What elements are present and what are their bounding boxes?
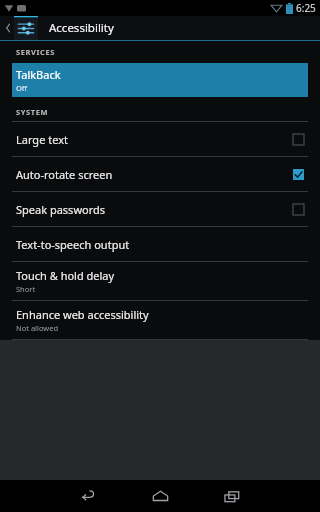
button[interactable]: Text-to-speech output	[0, 227, 320, 261]
button[interactable]: Auto-rotate screen	[0, 157, 320, 191]
button[interactable]: Enhance web accessibility	[0, 301, 320, 339]
button[interactable]: TalkBack	[12, 63, 308, 97]
staticText: Auto-rotate screen	[16, 167, 293, 182]
button[interactable]: Home	[124, 480, 196, 512]
staticText: Text-to-speech output	[16, 237, 130, 252]
button[interactable]: Back	[52, 480, 124, 512]
staticText: Accessibility	[49, 20, 114, 36]
button[interactable]: Touch & hold delay	[0, 262, 320, 300]
staticText: Speak passwords	[16, 202, 293, 217]
staticText: Off	[16, 83, 28, 93]
staticText: Touch & hold delay	[16, 268, 115, 283]
staticText: Not allowed	[16, 323, 59, 333]
staticText: Large text	[16, 132, 293, 147]
staticText: Enhance web accessibility	[16, 307, 149, 322]
staticText: TalkBack	[16, 67, 61, 82]
staticText: 6:25	[296, 1, 316, 15]
button[interactable]: Speak passwords	[0, 192, 320, 226]
button[interactable]: Navigate up	[0, 16, 114, 40]
staticText: SYSTEM	[16, 107, 49, 117]
staticText: Short	[16, 284, 36, 294]
button[interactable]: Large text	[0, 122, 320, 156]
staticText: SERVICES	[16, 47, 55, 57]
button[interactable]: Recent apps	[196, 480, 268, 512]
